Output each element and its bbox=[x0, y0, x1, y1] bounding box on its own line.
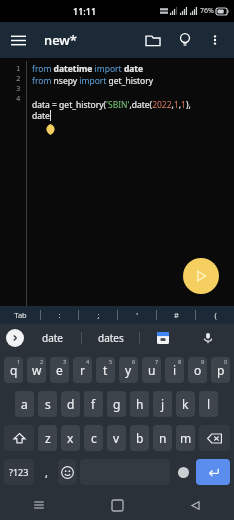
button[interactable]: Emoji bbox=[58, 459, 76, 485]
staticText: w bbox=[32, 362, 42, 378]
button[interactable]: dates bbox=[82, 324, 139, 352]
button[interactable]: f bbox=[84, 391, 103, 417]
button[interactable]: Tab bbox=[0, 306, 40, 324]
button[interactable]: # bbox=[157, 306, 195, 324]
staticText: i bbox=[173, 362, 177, 378]
staticText: 5 bbox=[109, 358, 113, 365]
button[interactable]: ' bbox=[118, 306, 156, 324]
staticText: m bbox=[180, 430, 192, 446]
button[interactable]: i bbox=[165, 357, 184, 383]
button[interactable]: Shift bbox=[4, 425, 34, 451]
staticText: 11:11 bbox=[73, 5, 97, 17]
staticText: 3 bbox=[63, 358, 67, 365]
button[interactable]: e bbox=[50, 357, 69, 383]
staticText: k bbox=[182, 396, 189, 412]
staticText: data = get_history('SBIN',date(2022,1,1)… bbox=[32, 99, 191, 111]
button[interactable]: Calendar bbox=[140, 324, 185, 352]
button[interactable]: w bbox=[27, 357, 46, 383]
staticText: y bbox=[125, 362, 132, 378]
staticText: date bbox=[32, 110, 50, 122]
staticText: v bbox=[113, 430, 120, 446]
button[interactable]: h bbox=[130, 391, 149, 417]
staticText: 3 bbox=[16, 83, 21, 93]
button[interactable]: Language bbox=[174, 459, 192, 485]
button[interactable]: , bbox=[38, 459, 54, 485]
button[interactable]: Hints bbox=[170, 25, 200, 55]
button[interactable]: t bbox=[96, 357, 115, 383]
button[interactable]: : bbox=[41, 306, 78, 324]
button[interactable]: z bbox=[38, 425, 57, 451]
button[interactable]: j bbox=[153, 391, 172, 417]
button[interactable]: ?123 bbox=[4, 459, 34, 485]
staticText: 4 bbox=[86, 358, 90, 365]
staticText: from nsepy import get_history bbox=[32, 75, 154, 87]
button[interactable]: k bbox=[176, 391, 195, 417]
staticText: 2 bbox=[16, 73, 21, 83]
button[interactable]: v bbox=[107, 425, 126, 451]
button[interactable]: u bbox=[142, 357, 161, 383]
staticText: z bbox=[45, 430, 51, 446]
staticText: 76% bbox=[200, 6, 214, 16]
staticText: c bbox=[91, 430, 97, 446]
button[interactable]: Run bbox=[183, 258, 219, 294]
button[interactable]: m bbox=[176, 425, 195, 451]
button[interactable]: ; bbox=[79, 306, 117, 324]
button[interactable]: a bbox=[15, 391, 34, 417]
button[interactable]: Recent apps bbox=[0, 490, 78, 520]
staticText: b bbox=[136, 430, 144, 446]
staticText: g bbox=[113, 396, 121, 412]
button[interactable]: Home bbox=[78, 490, 156, 520]
staticText: o bbox=[194, 362, 202, 378]
button[interactable]: o bbox=[188, 357, 207, 383]
staticText: # bbox=[174, 310, 179, 320]
button[interactable]: q bbox=[4, 357, 23, 383]
staticText: 9 bbox=[201, 358, 205, 365]
button[interactable]: n bbox=[153, 425, 172, 451]
button[interactable]: Back bbox=[156, 490, 234, 520]
staticText: : bbox=[58, 310, 61, 320]
staticText: x bbox=[67, 430, 74, 446]
button[interactable]: More options bbox=[200, 25, 230, 55]
staticText: q bbox=[10, 362, 18, 378]
button[interactable]: Open file bbox=[136, 23, 170, 57]
button[interactable]: ( bbox=[196, 306, 234, 324]
button[interactable]: Menu bbox=[0, 22, 36, 58]
button[interactable]: Backspace bbox=[199, 425, 230, 451]
button[interactable]: Enter bbox=[196, 459, 230, 485]
staticText: dates bbox=[98, 331, 124, 345]
button[interactable]: x bbox=[61, 425, 80, 451]
button[interactable]: y bbox=[119, 357, 138, 383]
button[interactable]: c bbox=[84, 425, 103, 451]
staticText: ' bbox=[136, 310, 138, 320]
staticText: 2 bbox=[40, 358, 44, 365]
staticText: u bbox=[148, 362, 156, 378]
staticText: l bbox=[207, 396, 211, 412]
staticText: t bbox=[103, 362, 108, 378]
staticText: j bbox=[161, 396, 165, 412]
button[interactable]: g bbox=[107, 391, 126, 417]
staticText: p bbox=[217, 362, 225, 378]
button[interactable]: r bbox=[73, 357, 92, 383]
button[interactable]: b bbox=[130, 425, 149, 451]
staticText: ( bbox=[214, 310, 217, 320]
staticText: 1 bbox=[16, 63, 21, 73]
button[interactable]: s bbox=[38, 391, 57, 417]
staticText: ?123 bbox=[9, 466, 29, 478]
button[interactable]: Voice input bbox=[185, 324, 230, 352]
staticText: new* bbox=[44, 31, 77, 49]
button[interactable]: d bbox=[61, 391, 80, 417]
button[interactable]: Expand toolbar bbox=[6, 329, 24, 347]
staticText: 7 bbox=[155, 358, 159, 365]
staticText: e bbox=[56, 362, 63, 378]
staticText: 0 bbox=[224, 358, 228, 365]
staticText: f bbox=[91, 396, 96, 412]
staticText: r bbox=[80, 362, 85, 378]
staticText: d bbox=[67, 396, 75, 412]
staticText: 8 bbox=[178, 358, 182, 365]
button[interactable]: date bbox=[24, 324, 81, 352]
button[interactable]: l bbox=[199, 391, 218, 417]
button[interactable]: p bbox=[211, 357, 230, 383]
staticText: from datetime import date bbox=[32, 63, 144, 75]
staticText: date bbox=[42, 331, 64, 345]
